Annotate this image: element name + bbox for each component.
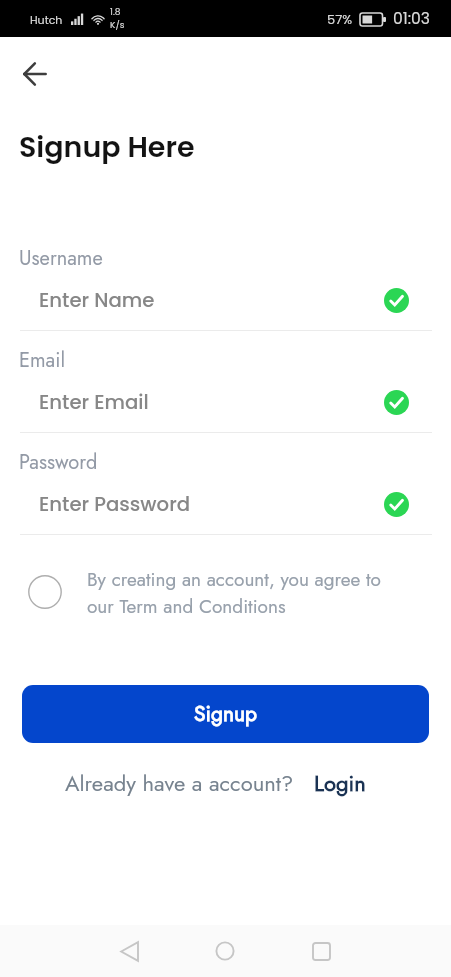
button[interactable]: Back	[105, 927, 153, 975]
staticText: Email	[19, 346, 66, 375]
staticText: Already have a account?	[65, 767, 294, 799]
staticText: Hutch	[30, 12, 63, 27]
staticText: 1.8	[110, 6, 121, 19]
staticText: Enter Email	[39, 388, 149, 416]
staticText: K/s	[110, 19, 125, 32]
staticText: 01:03	[393, 8, 430, 30]
button[interactable]: Back	[13, 52, 56, 95]
staticText: Login	[314, 767, 366, 799]
staticText: Enter Password	[39, 490, 191, 518]
button[interactable]: Recent apps	[297, 927, 345, 975]
button[interactable]: By creating an account, you agree to our…	[28, 566, 431, 620]
button[interactable]: Home	[201, 927, 249, 975]
staticText: Signup	[194, 699, 257, 729]
staticText: 57%	[327, 10, 353, 28]
staticText: Enter Name	[39, 286, 155, 314]
staticText: Username	[19, 244, 103, 273]
staticText: By creating an account, you agree to our…	[87, 566, 387, 620]
button[interactable]: Signup	[22, 685, 429, 743]
button[interactable]: Login	[314, 767, 366, 799]
staticText: Password	[19, 448, 98, 477]
staticText: Signup Here	[19, 127, 195, 167]
